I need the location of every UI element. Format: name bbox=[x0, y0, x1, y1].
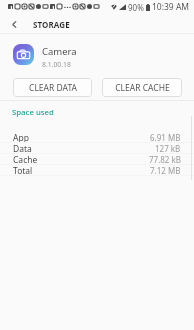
staticText: 7.12 MB bbox=[150, 165, 181, 176]
staticText: 90% bbox=[128, 2, 144, 13]
staticText: Cache bbox=[13, 154, 38, 165]
staticText: Data bbox=[13, 143, 32, 154]
staticText: 6.91 MB bbox=[150, 132, 181, 143]
button[interactable]: CLEAR DATA bbox=[13, 78, 92, 97]
staticText: 127 kB bbox=[155, 143, 181, 154]
staticText: Space used bbox=[12, 107, 54, 118]
button[interactable]: Cache bbox=[0, 154, 194, 165]
staticText: CLEAR DATA bbox=[29, 82, 77, 94]
staticText: 10:39 AM bbox=[152, 1, 190, 13]
staticText: 8.1.00.18 bbox=[42, 60, 71, 69]
staticText: CLEAR CACHE bbox=[115, 82, 170, 94]
button[interactable]: Back bbox=[0, 15, 29, 34]
staticText: Camera bbox=[42, 45, 77, 58]
button[interactable]: CLEAR CACHE bbox=[102, 78, 182, 97]
staticText: 77.82 kB bbox=[149, 154, 181, 165]
button[interactable]: Camera bbox=[0, 41, 194, 67]
button[interactable]: Data bbox=[0, 143, 194, 154]
staticText: App bbox=[13, 132, 29, 143]
button[interactable]: Total bbox=[0, 165, 194, 176]
staticText: Total bbox=[13, 165, 33, 176]
staticText: STORAGE bbox=[33, 19, 70, 30]
button[interactable]: App bbox=[0, 132, 194, 143]
